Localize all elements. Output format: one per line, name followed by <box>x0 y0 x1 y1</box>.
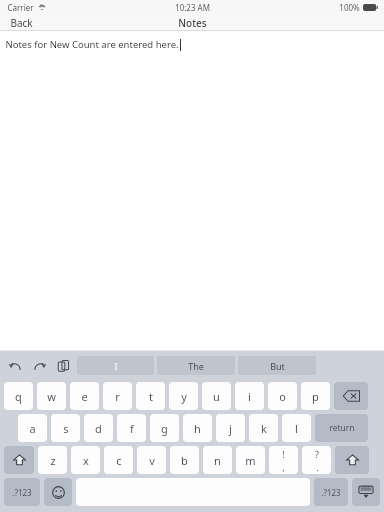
staticText: Notes <box>178 16 207 30</box>
button[interactable]: v <box>137 446 166 474</box>
button[interactable]: Backspace <box>334 382 368 410</box>
staticText: i <box>248 389 251 404</box>
button[interactable]: But <box>238 356 316 375</box>
staticText: g <box>161 421 168 436</box>
staticText: p <box>312 389 319 404</box>
button[interactable]: ? <box>302 446 331 474</box>
button[interactable]: i <box>235 382 264 410</box>
staticText: w <box>47 389 56 404</box>
button[interactable]: g <box>150 414 179 442</box>
staticText: e <box>81 389 88 404</box>
button[interactable]: p <box>301 382 330 410</box>
button[interactable]: Redo <box>30 357 48 375</box>
staticText: n <box>214 453 221 468</box>
staticText: s <box>63 421 69 436</box>
staticText: h <box>194 421 201 436</box>
staticText: x <box>83 453 89 468</box>
button[interactable]: return <box>315 414 368 442</box>
button[interactable]: o <box>268 382 297 410</box>
staticText: But <box>270 360 285 372</box>
button[interactable]: b <box>170 446 199 474</box>
button[interactable]: Notes for New Count are entered here. <box>0 31 384 351</box>
button[interactable]: I <box>77 356 154 375</box>
button[interactable]: e <box>70 382 99 410</box>
staticText: ? <box>315 448 319 460</box>
staticText: Carrier <box>7 2 34 13</box>
button[interactable]: d <box>84 414 113 442</box>
button[interactable]: The <box>157 356 235 375</box>
button[interactable]: z <box>38 446 67 474</box>
staticText: The <box>188 360 204 372</box>
button[interactable]: f <box>117 414 146 442</box>
staticText: l <box>295 421 298 436</box>
staticText: y <box>181 389 187 404</box>
button[interactable]: Back <box>0 14 43 31</box>
button[interactable]: .?123 <box>4 478 40 506</box>
staticText: z <box>50 453 56 468</box>
button[interactable]: Hide keyboard <box>352 478 380 506</box>
staticText: u <box>213 389 220 404</box>
staticText: .?123 <box>321 487 341 498</box>
button[interactable]: y <box>169 382 198 410</box>
button[interactable]: r <box>103 382 132 410</box>
staticText: o <box>279 389 286 404</box>
staticText: f <box>130 421 134 436</box>
staticText: 100% <box>339 2 360 13</box>
button[interactable]: u <box>202 382 231 410</box>
staticText: . <box>316 461 319 473</box>
button[interactable]: Undo <box>6 357 24 375</box>
staticText: r <box>115 389 120 404</box>
button[interactable]: Emoji <box>44 478 72 506</box>
staticText: b <box>181 453 188 468</box>
button[interactable]: m <box>236 446 265 474</box>
button[interactable]: l <box>282 414 311 442</box>
button[interactable]: w <box>37 382 66 410</box>
button[interactable]: s <box>51 414 80 442</box>
staticText: 10:23 AM <box>175 2 210 13</box>
button[interactable]: Shift <box>4 446 34 474</box>
staticText: q <box>15 389 22 404</box>
button[interactable]: ! <box>269 446 298 474</box>
staticText: j <box>229 421 232 436</box>
staticText: Notes for New Count are entered here. <box>5 38 179 51</box>
staticText: return <box>329 422 355 434</box>
button[interactable]: t <box>136 382 165 410</box>
staticText: Back <box>10 16 33 29</box>
staticText: d <box>95 421 102 436</box>
button[interactable]: c <box>104 446 133 474</box>
button[interactable]: x <box>71 446 100 474</box>
staticText: v <box>149 453 155 468</box>
button[interactable]: n <box>203 446 232 474</box>
button[interactable]: Shift <box>335 446 369 474</box>
staticText: c <box>116 453 122 468</box>
staticText: t <box>149 389 153 404</box>
button[interactable]: j <box>216 414 245 442</box>
staticText: ! <box>282 448 285 460</box>
staticText: a <box>29 421 36 436</box>
staticText: m <box>245 453 256 468</box>
button[interactable]: a <box>18 414 47 442</box>
button[interactable]: Paste <box>54 357 72 375</box>
staticText: .?123 <box>12 487 32 498</box>
staticText: I <box>114 360 118 372</box>
button[interactable]: q <box>4 382 33 410</box>
button[interactable]: k <box>249 414 278 442</box>
button[interactable]: h <box>183 414 212 442</box>
staticText: k <box>261 421 267 436</box>
staticText: , <box>282 461 285 473</box>
button[interactable]: .?123 <box>314 478 348 506</box>
